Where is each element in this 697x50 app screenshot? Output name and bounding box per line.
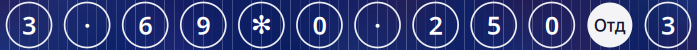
button[interactable]: 3 xyxy=(0,0,58,50)
staticText: 9 xyxy=(196,8,210,42)
staticText: 2 xyxy=(429,8,443,42)
staticText: 3 xyxy=(22,8,36,42)
button[interactable]: · xyxy=(58,0,116,50)
button[interactable]: Отд xyxy=(581,0,639,50)
button[interactable]: 2 xyxy=(407,0,465,50)
button[interactable]: 5 xyxy=(465,0,523,50)
button[interactable]: 6 xyxy=(116,0,174,50)
button[interactable]: · xyxy=(348,0,407,50)
staticText: 5 xyxy=(487,8,501,42)
staticText: 0 xyxy=(545,8,559,42)
staticText: · xyxy=(374,8,381,42)
button[interactable]: 0 xyxy=(290,0,348,50)
staticText: 0 xyxy=(312,8,326,42)
staticText: 3 xyxy=(661,8,675,42)
button[interactable]: 9 xyxy=(174,0,232,50)
staticText: Отд xyxy=(594,13,626,36)
staticText: · xyxy=(84,8,91,42)
staticText: ✻ xyxy=(251,11,272,39)
button[interactable]: 3 xyxy=(639,0,697,50)
staticText: 6 xyxy=(138,8,152,42)
button[interactable]: ✻ xyxy=(232,0,290,50)
button[interactable]: 0 xyxy=(523,0,581,50)
